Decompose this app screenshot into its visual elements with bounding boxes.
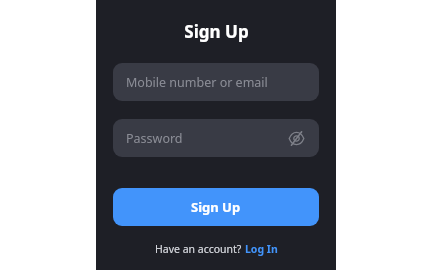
button[interactable]: Show password [286,128,306,148]
button[interactable]: Have an account? [96,240,336,258]
staticText: Sign Up [184,20,249,43]
staticText: Log In [245,242,278,256]
staticText: Password [126,130,183,147]
staticText: Mobile number or email [126,74,268,91]
button[interactable]: Mobile number or email [113,63,319,101]
button[interactable]: Sign Up [113,188,319,226]
button[interactable]: Password [113,119,319,157]
staticText: Have an account? [155,242,245,256]
staticText: Sign Up [191,198,241,216]
